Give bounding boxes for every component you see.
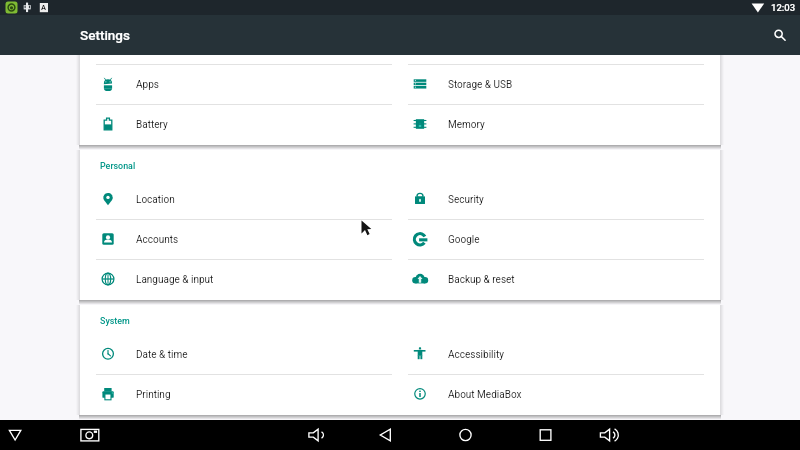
- button[interactable]: Backup & reset: [400, 259, 720, 299]
- button[interactable]: Location: [80, 179, 400, 219]
- button[interactable]: Hide navigation bar: [3, 423, 27, 447]
- button[interactable]: Date & time: [80, 334, 400, 374]
- staticText: Date & time: [136, 349, 188, 361]
- staticText: System: [100, 316, 130, 326]
- staticText: Storage & USB: [448, 79, 513, 91]
- staticText: Personal: [100, 161, 136, 171]
- staticText: Google: [448, 234, 480, 246]
- staticText: 12:03: [771, 2, 796, 13]
- button[interactable]: Google: [400, 219, 720, 259]
- button[interactable]: Printing: [80, 374, 400, 414]
- staticText: About MediaBox: [448, 389, 522, 401]
- button[interactable]: Security: [400, 179, 720, 219]
- button[interactable]: Battery: [80, 104, 400, 144]
- button[interactable]: About MediaBox: [400, 374, 720, 414]
- button[interactable]: Storage & USB: [400, 64, 720, 104]
- staticText: Settings: [80, 27, 130, 43]
- button[interactable]: Accessibility: [400, 334, 720, 374]
- staticText: Backup & reset: [448, 274, 515, 286]
- staticText: Apps: [136, 79, 159, 91]
- staticText: Security: [448, 194, 484, 206]
- staticText: A: [41, 3, 47, 12]
- staticText: Location: [136, 194, 175, 206]
- button[interactable]: Accounts: [80, 219, 400, 259]
- staticText: Accounts: [136, 234, 179, 246]
- staticText: Memory: [448, 119, 485, 131]
- button[interactable]: Search: [760, 16, 798, 54]
- button[interactable]: Apps: [80, 64, 400, 104]
- staticText: Battery: [136, 119, 168, 131]
- staticText: Language & input: [136, 274, 214, 286]
- button[interactable]: Memory: [400, 104, 720, 144]
- staticText: Printing: [136, 389, 171, 401]
- button[interactable]: Language & input: [80, 259, 400, 299]
- staticText: Accessibility: [448, 349, 504, 361]
